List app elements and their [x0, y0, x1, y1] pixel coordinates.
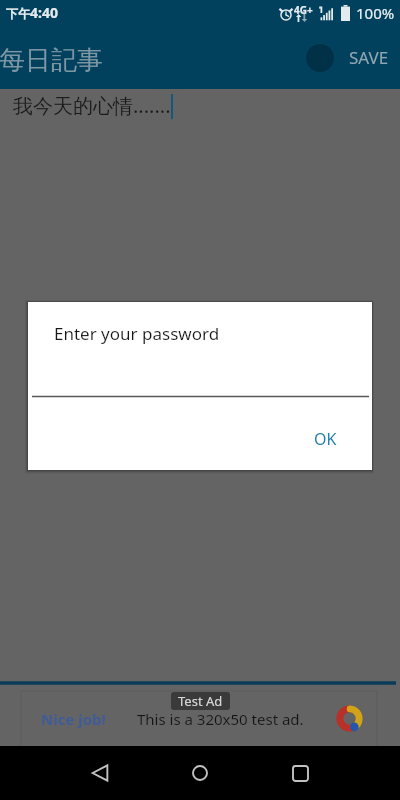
staticText: 每日記事 — [0, 44, 103, 77]
staticText: 我今天的心情....... — [13, 92, 171, 119]
staticText: 下午 — [6, 6, 30, 21]
staticText: Enter your password — [54, 322, 220, 345]
staticText: Test Ad — [178, 692, 223, 710]
button[interactable]: Home — [167, 746, 233, 800]
button[interactable]: Back — [67, 746, 133, 800]
button[interactable]: Save — [294, 25, 400, 89]
staticText: 4G+ — [294, 3, 313, 17]
button[interactable]: 我今天的心情....... — [0, 89, 400, 681]
staticText: OK — [314, 428, 337, 450]
staticText: 4:40 — [30, 3, 58, 22]
staticText: 100% — [356, 3, 395, 23]
button[interactable]: Recent apps — [267, 746, 333, 800]
button[interactable]: OK — [298, 420, 353, 458]
staticText: SAVE — [349, 46, 389, 69]
staticText: This is a 320x50 test ad. — [137, 709, 304, 729]
staticText: Nice job! — [41, 709, 106, 729]
